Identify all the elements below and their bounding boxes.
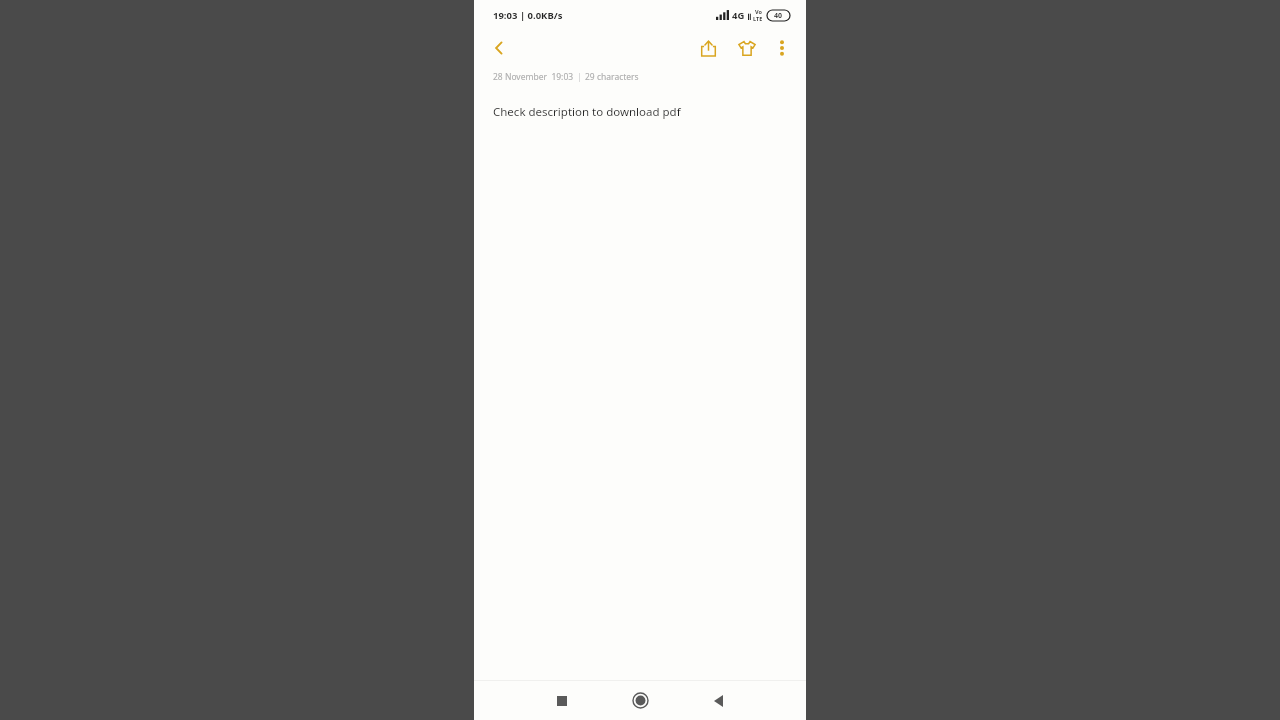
staticText: 4G — [732, 9, 745, 22]
button[interactable]: Theme — [731, 32, 763, 64]
staticText: Vo — [755, 8, 762, 15]
staticText: 40 — [774, 11, 783, 21]
button[interactable]: Share — [692, 32, 724, 64]
staticText: 29 characters — [585, 71, 639, 83]
button[interactable]: Back — [482, 31, 516, 65]
staticText: 28 November 19:03 — [493, 71, 574, 83]
staticText: Check description to download pdf — [493, 104, 681, 120]
button[interactable]: Recents — [523, 681, 601, 720]
button[interactable]: Home — [601, 681, 679, 720]
staticText: 19:03 | 0.0KB/s — [493, 9, 563, 22]
staticText: LTE — [753, 15, 763, 22]
button[interactable]: More options — [768, 34, 796, 62]
button[interactable]: Back — [679, 681, 757, 720]
